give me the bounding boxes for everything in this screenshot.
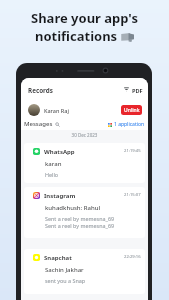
staticText: Snapchat — [44, 254, 72, 262]
staticText: Karan Raj — [44, 107, 69, 114]
staticText: Messages — [24, 120, 53, 128]
staticText: 21:15:07 — [124, 192, 141, 198]
staticText: PDF — [132, 87, 143, 95]
button[interactable]: Unlink — [121, 105, 142, 115]
staticText: Hello — [45, 171, 59, 178]
staticText: Unlink — [124, 107, 140, 114]
button[interactable]: Records — [28, 86, 53, 95]
button[interactable]: PDF — [132, 87, 143, 95]
staticText: Instagram — [44, 192, 76, 200]
staticText: Sent a reel by memesna_69 — [45, 222, 115, 229]
staticText: sent you a Snap — [45, 277, 86, 284]
staticText: notifications — [35, 27, 118, 45]
button[interactable]: WhatsApp — [24, 143, 145, 183]
staticText: 22:29:16 — [124, 254, 141, 260]
staticText: 1 application — [114, 121, 145, 128]
staticText: Records — [28, 86, 53, 95]
button[interactable]: Snapchat — [24, 249, 145, 294]
staticText: 21:19:45 — [124, 148, 141, 154]
button[interactable]: Messages — [24, 120, 53, 128]
staticText: 30 Dec 2023 — [21, 132, 148, 138]
staticText: Sachin Jakhar — [45, 266, 84, 274]
button[interactable]: Karan Raj — [44, 107, 69, 114]
staticText: karan — [45, 160, 62, 168]
button[interactable]: Instagram — [24, 187, 145, 238]
staticText: kuhadkhush: Rahul — [45, 204, 101, 212]
staticText: Sent a reel by memesna_69 — [45, 215, 115, 222]
staticText: WhatsApp — [44, 148, 75, 156]
button[interactable]: Filter — [124, 87, 129, 92]
staticText: Share your app's — [31, 9, 138, 27]
